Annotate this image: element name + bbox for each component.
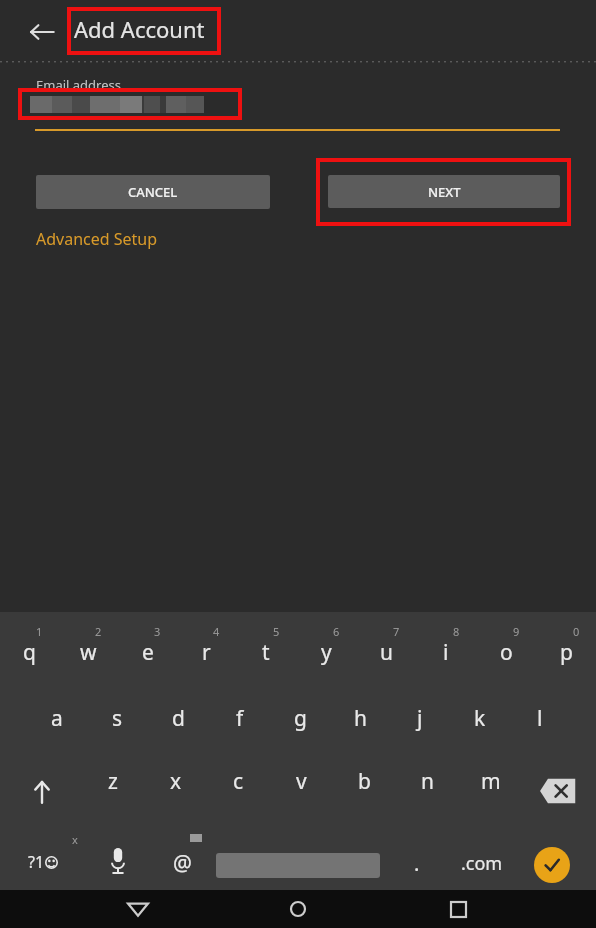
- staticText: 9: [513, 624, 520, 639]
- button[interactable]: NEXT: [328, 175, 560, 208]
- button[interactable]: h: [330, 704, 390, 750]
- staticText: NEXT: [428, 183, 461, 201]
- staticText: CANCEL: [128, 183, 178, 201]
- button[interactable]: 9: [476, 624, 536, 682]
- button[interactable]: Backspace: [528, 771, 582, 811]
- staticText: j: [417, 704, 423, 733]
- staticText: w: [80, 638, 97, 667]
- staticText: d: [172, 704, 185, 733]
- button[interactable]: k: [450, 704, 510, 750]
- button[interactable]: Back: [22, 12, 62, 52]
- button[interactable]: d: [148, 704, 209, 750]
- button[interactable]: Done: [534, 847, 570, 883]
- staticText: 0: [573, 624, 580, 639]
- staticText: .: [414, 850, 420, 877]
- button[interactable]: 0: [536, 624, 596, 682]
- button[interactable]: CANCEL: [36, 175, 270, 209]
- staticText: p: [560, 638, 573, 667]
- staticText: Add Account: [74, 14, 205, 44]
- button[interactable]: .: [396, 844, 438, 882]
- staticText: h: [354, 704, 367, 733]
- staticText: q: [23, 638, 36, 667]
- staticText: c: [233, 767, 244, 796]
- staticText: f: [236, 704, 244, 733]
- staticText: 5: [273, 624, 280, 639]
- staticText: b: [358, 767, 371, 796]
- button[interactable]: j: [390, 704, 450, 750]
- button[interactable]: f: [209, 704, 270, 750]
- button[interactable]: @: [158, 844, 206, 882]
- staticText: ?1: [28, 851, 45, 873]
- button[interactable]: m: [459, 767, 522, 817]
- button[interactable]: Recent apps: [436, 890, 480, 928]
- button[interactable]: .com: [446, 844, 518, 882]
- staticText: e: [142, 638, 154, 667]
- staticText: .com: [461, 851, 503, 876]
- button[interactable]: s: [87, 704, 148, 750]
- staticText: o: [500, 638, 513, 667]
- staticText: 2: [95, 624, 102, 639]
- staticText: r: [202, 638, 211, 667]
- staticText: m: [481, 767, 501, 796]
- staticText: s: [112, 704, 123, 733]
- button[interactable]: 6: [296, 624, 356, 682]
- button[interactable]: x: [144, 767, 207, 817]
- staticText: a: [51, 704, 63, 733]
- button[interactable]: b: [333, 767, 396, 817]
- staticText: @: [173, 849, 192, 878]
- staticText: z: [108, 767, 118, 796]
- button[interactable]: Back: [116, 890, 160, 928]
- button[interactable]: Email address: [36, 76, 121, 94]
- staticText: 4: [213, 624, 220, 639]
- staticText: n: [421, 767, 434, 796]
- button[interactable]: Shift: [16, 767, 68, 817]
- button[interactable]: 7: [356, 624, 416, 682]
- staticText: y: [321, 638, 332, 667]
- button[interactable]: a: [26, 704, 87, 750]
- button[interactable]: Voice input: [94, 840, 142, 882]
- button[interactable]: Advanced Setup: [36, 228, 158, 250]
- button[interactable]: n: [396, 767, 459, 817]
- button[interactable]: z: [82, 767, 144, 817]
- button[interactable]: 3: [118, 624, 177, 682]
- button[interactable]: Symbols: [10, 842, 76, 882]
- staticText: u: [380, 638, 393, 667]
- staticText: x: [72, 832, 78, 847]
- staticText: Advanced Setup: [36, 228, 158, 250]
- staticText: 8: [453, 624, 460, 639]
- staticText: v: [296, 767, 307, 796]
- button[interactable]: c: [207, 767, 270, 817]
- button[interactable]: 1: [0, 624, 59, 682]
- staticText: 6: [333, 624, 340, 639]
- button[interactable]: 5: [236, 624, 296, 682]
- staticText: i: [443, 638, 449, 667]
- button[interactable]: Home: [276, 890, 320, 928]
- staticText: g: [294, 704, 307, 733]
- staticText: l: [537, 704, 543, 733]
- button[interactable]: l: [510, 704, 570, 750]
- staticText: x: [170, 767, 182, 796]
- button[interactable]: 4: [177, 624, 236, 682]
- staticText: k: [474, 704, 486, 733]
- staticText: 3: [154, 624, 161, 639]
- staticText: 1: [36, 624, 43, 639]
- button[interactable]: Add Account: [74, 14, 205, 44]
- button[interactable]: g: [270, 704, 330, 750]
- button[interactable]: v: [270, 767, 333, 817]
- staticText: t: [262, 638, 270, 667]
- staticText: 7: [393, 624, 400, 639]
- staticText: Email address: [36, 76, 121, 94]
- button[interactable]: 2: [59, 624, 118, 682]
- button[interactable]: 8: [416, 624, 476, 682]
